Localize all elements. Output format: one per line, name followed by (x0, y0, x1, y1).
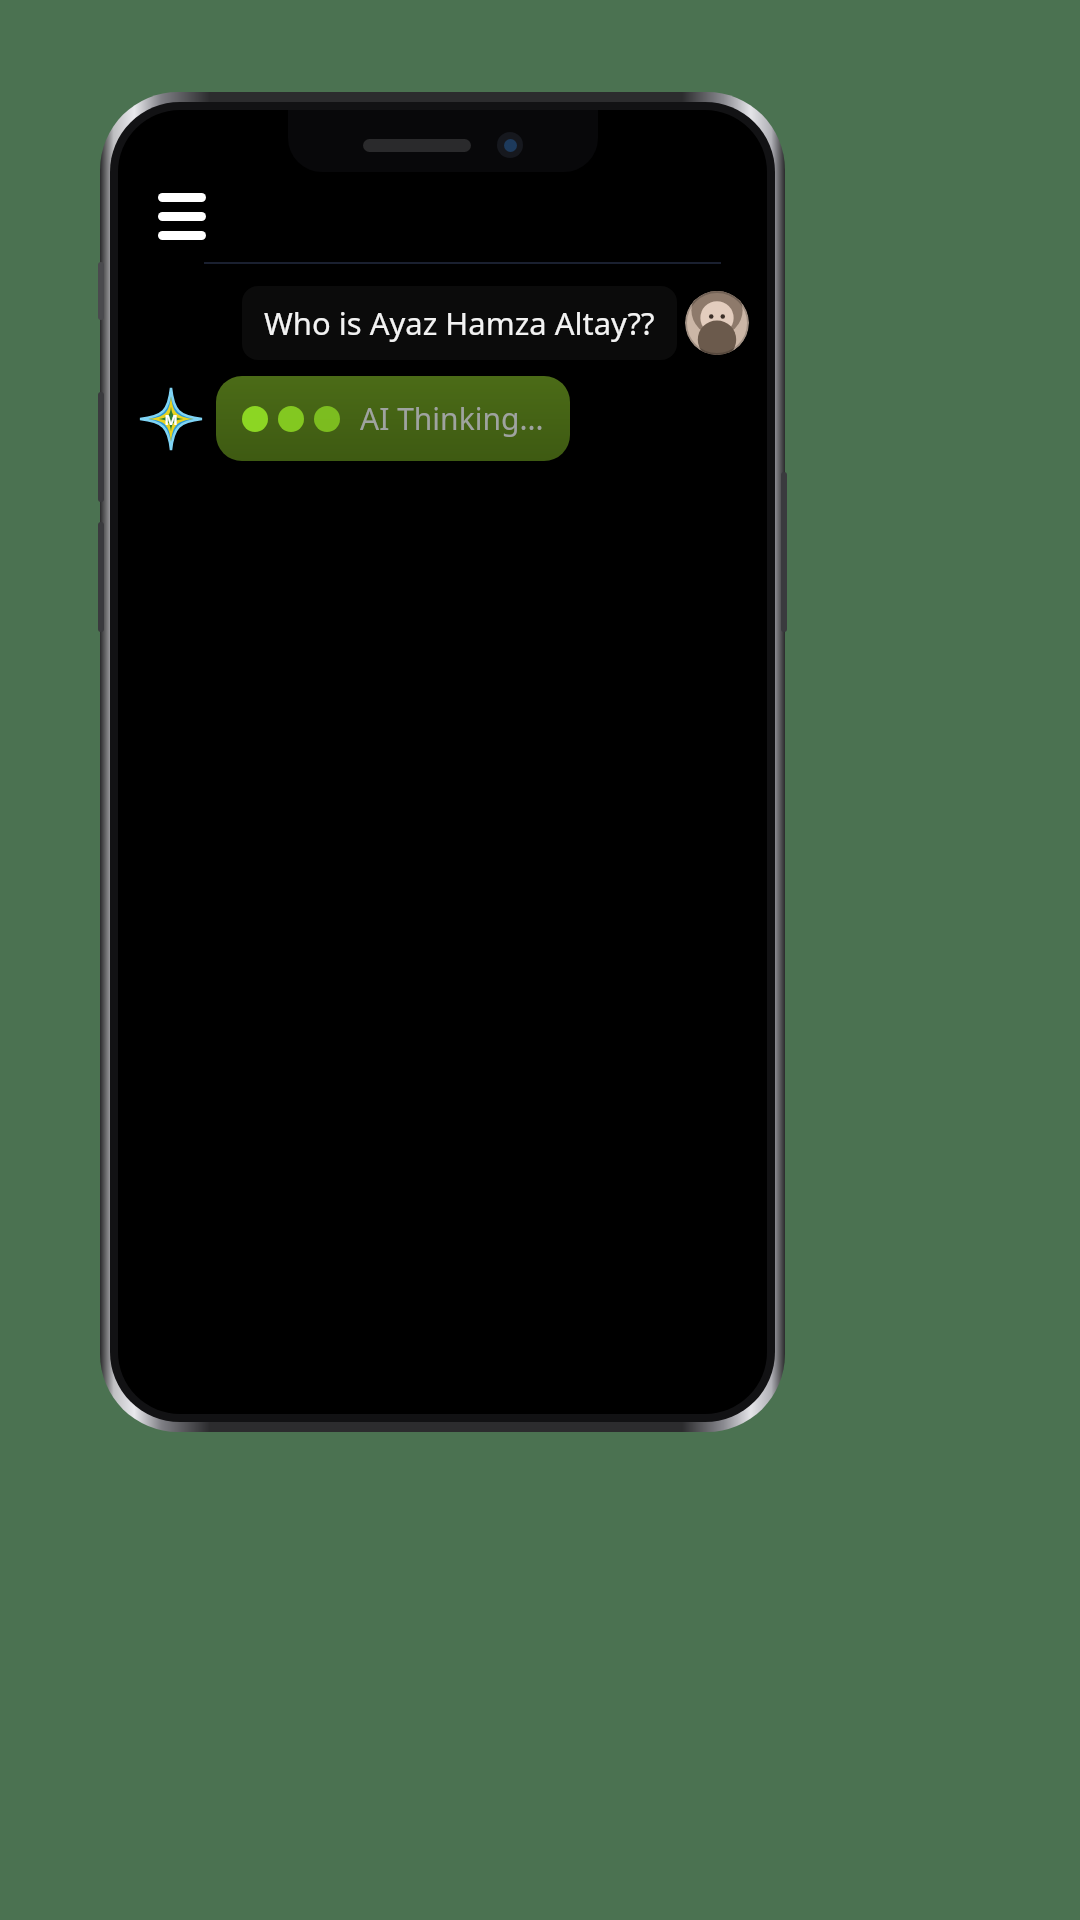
staticText: Who is Ayaz Hamza Altay?? (264, 302, 655, 344)
button[interactable]: AI assistant (140, 376, 727, 461)
button[interactable]: Open navigation menu (158, 188, 214, 244)
button[interactable]: Who is Ayaz Hamza Altay?? (158, 286, 749, 360)
staticText: M (164, 410, 178, 429)
button[interactable]: User avatar (685, 291, 749, 355)
button[interactable]: AI assistant (140, 388, 202, 450)
staticText: AI Thinking... (360, 398, 544, 439)
